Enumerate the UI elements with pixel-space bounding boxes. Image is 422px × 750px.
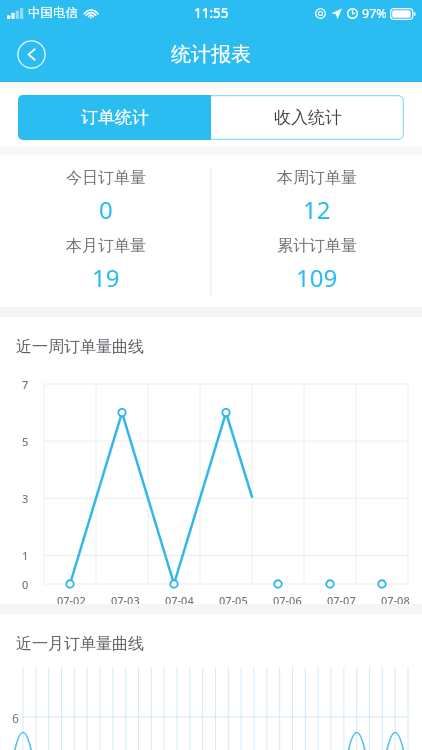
staticText: 0 (22, 577, 29, 592)
staticText: 近一月订单量曲线 (16, 634, 144, 654)
staticText: 今日订单量 (66, 168, 146, 188)
button[interactable]: 订单统计 (18, 95, 211, 140)
staticText: 07-06 (273, 593, 302, 608)
staticText: 3 (22, 491, 29, 506)
staticText: 1 (22, 548, 29, 563)
staticText: 7 (22, 377, 29, 392)
staticText: 本月订单量 (66, 236, 146, 256)
staticText: 07-08 (381, 593, 410, 608)
staticText: 6 (12, 710, 19, 726)
staticText: 19 (92, 261, 120, 294)
staticText: 07-05 (219, 593, 248, 608)
staticText: 07-04 (165, 593, 194, 608)
staticText: 109 (296, 261, 338, 294)
staticText: 07-03 (111, 593, 140, 608)
staticText: 5 (22, 434, 29, 449)
staticText: 12 (303, 193, 331, 226)
staticText: 11:55 (194, 4, 229, 22)
staticText: 97% (362, 5, 387, 22)
button[interactable]: 收入统计 (211, 95, 404, 140)
staticText: 本周订单量 (277, 168, 357, 188)
staticText: 收入统计 (274, 107, 342, 128)
staticText: 中国电信 (28, 5, 78, 21)
button[interactable]: Back (13, 36, 49, 72)
staticText: 订单统计 (81, 107, 149, 128)
staticText: 07-07 (327, 593, 356, 608)
staticText: 0 (99, 193, 113, 226)
staticText: 统计报表 (171, 42, 251, 67)
staticText: 07-02 (57, 593, 86, 608)
staticText: 累计订单量 (277, 236, 357, 256)
staticText: 近一周订单量曲线 (16, 337, 144, 357)
